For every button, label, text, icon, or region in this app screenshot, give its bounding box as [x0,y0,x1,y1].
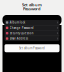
button[interactable]: Album lock [4,20,59,25]
button[interactable]: Security Question [4,31,59,36]
button[interactable]: Set album Password [4,44,59,52]
button[interactable]: Email Address [4,36,59,41]
staticText: Change Password [10,26,34,30]
button[interactable]: Change Password [4,25,59,31]
staticText: Email Address [10,37,28,40]
staticText: Set album [22,2,42,7]
staticText: Album lock [10,21,25,24]
staticText: Set album Password [19,46,45,50]
staticText: Password [23,6,41,11]
staticText: Security Question [10,31,34,35]
